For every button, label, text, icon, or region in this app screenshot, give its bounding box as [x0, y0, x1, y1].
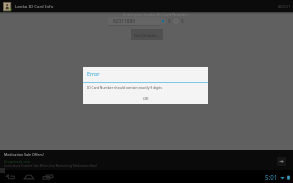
staticText: X	[181, 18, 184, 24]
staticText: Drugsmeds.com	[4, 159, 31, 164]
button[interactable]: OK	[83, 94, 208, 103]
staticText: ID Card Number should contain exactly 9 …	[87, 85, 162, 90]
staticText: Error	[87, 71, 100, 78]
staticText: Learn about Possible Side Effects that R…	[4, 164, 98, 168]
button[interactable]: V	[160, 18, 171, 24]
staticText: OK	[143, 96, 149, 101]
button[interactable]: ABOUT	[276, 4, 293, 9]
staticText: ABOUT	[278, 4, 291, 9]
staticText: 5:01	[265, 173, 278, 181]
staticText: 82311889	[113, 18, 135, 25]
button[interactable]: 82311889	[108, 17, 160, 26]
button[interactable]: X	[173, 18, 184, 24]
staticText: V	[168, 18, 171, 24]
button[interactable]: Back	[3, 172, 17, 181]
button[interactable]: Expand notification	[277, 157, 286, 166]
button[interactable]: Recent apps	[41, 172, 55, 181]
staticText: Lanka ID Card Info	[15, 3, 54, 9]
staticText: Get Details...	[134, 32, 160, 38]
staticText: Enter your Lanka ID Card Number	[123, 12, 189, 18]
button[interactable]: Get Details...	[131, 29, 163, 40]
button[interactable]: Lanka ID Card Info	[0, 0, 293, 12]
button[interactable]: Home	[22, 172, 36, 181]
staticText: Medication Sale Offers!	[4, 152, 44, 157]
